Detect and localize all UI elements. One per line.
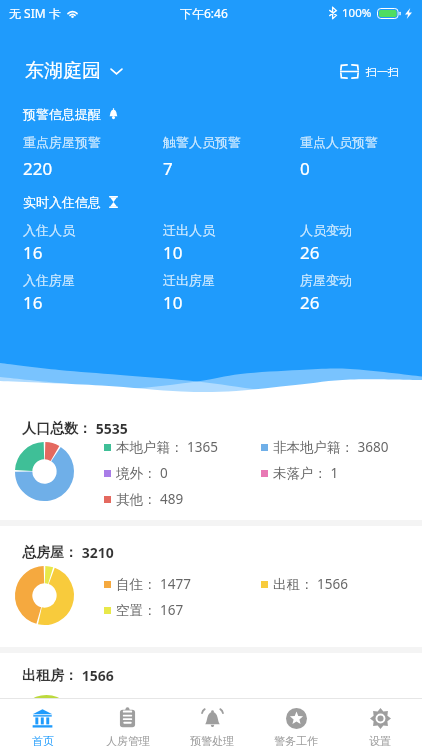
staticText: 空置： 167 (116, 601, 184, 619)
staticText: 26 (300, 291, 320, 314)
staticText: 出租房： (22, 667, 78, 685)
staticText: 实时入住信息 (23, 194, 101, 210)
staticText: 无 SIM 卡 (9, 5, 61, 21)
staticText: 迁出房屋 (163, 272, 215, 288)
button[interactable]: 重点房屋预警 (23, 134, 163, 180)
staticText: 迁出人员 (163, 222, 215, 238)
staticText: 其他： 489 (116, 490, 184, 508)
staticText: 东湖庭园 (25, 59, 101, 83)
staticText: 26 (300, 241, 320, 264)
staticText: 入住房屋 (23, 272, 75, 288)
staticText: 5535 (92, 419, 128, 438)
staticText: 出租： 1566 (273, 575, 348, 593)
staticText: 重点人员预警 (300, 134, 378, 150)
staticText: 入住人员 (23, 222, 75, 238)
staticText: 100% (342, 5, 372, 21)
staticText: 本地户籍： 1365 (116, 438, 218, 456)
staticText: 16 (23, 241, 43, 264)
button[interactable]: 东湖庭园 (23, 53, 125, 89)
staticText: 0 (300, 157, 310, 180)
staticText: 16 (23, 291, 43, 314)
staticText: 7 (163, 157, 173, 180)
staticText: 未落户： 1 (273, 464, 339, 482)
staticText: 房屋变动 (300, 272, 352, 288)
button[interactable]: 房屋变动 (300, 272, 412, 314)
staticText: 人口总数： (22, 420, 92, 438)
button[interactable]: 警务工作 (254, 699, 338, 750)
staticText: 境外： 0 (116, 464, 168, 482)
staticText: 预警信息提醒 (23, 106, 101, 122)
staticText: 重点房屋预警 (23, 134, 101, 150)
button[interactable]: 入住人员 (23, 222, 163, 264)
staticText: 10 (163, 241, 183, 264)
staticText: 人房管理 (106, 734, 150, 746)
button[interactable]: 预警处理 (170, 699, 254, 750)
staticText: 总房屋： (22, 544, 78, 562)
staticText: 自住： 1477 (116, 575, 191, 593)
button[interactable]: 重点人员预警 (300, 134, 412, 180)
staticText: 非本地户籍： 3680 (273, 438, 389, 456)
staticText: 人员变动 (300, 222, 352, 238)
staticText: 警务工作 (274, 734, 318, 746)
button[interactable]: 迁出人员 (163, 222, 300, 264)
button[interactable]: 入住房屋 (23, 272, 163, 314)
staticText: 设置 (369, 734, 391, 746)
button[interactable]: 迁出房屋 (163, 272, 300, 314)
staticText: 首页 (32, 734, 54, 746)
button[interactable]: 扫一扫 (338, 58, 401, 85)
staticText: 下午6:46 (180, 5, 228, 21)
staticText: 1566 (78, 666, 114, 685)
button[interactable]: 触警人员预警 (163, 134, 300, 180)
button[interactable]: 首页 (0, 699, 85, 750)
staticText: 10 (163, 291, 183, 314)
button[interactable]: 人房管理 (85, 699, 170, 750)
staticText: 220 (23, 157, 53, 180)
staticText: 扫一扫 (366, 65, 399, 79)
button[interactable]: 人员变动 (300, 222, 412, 264)
button[interactable]: 设置 (338, 699, 422, 750)
staticText: 触警人员预警 (163, 134, 241, 150)
staticText: 预警处理 (190, 734, 234, 746)
staticText: 3210 (78, 543, 114, 562)
